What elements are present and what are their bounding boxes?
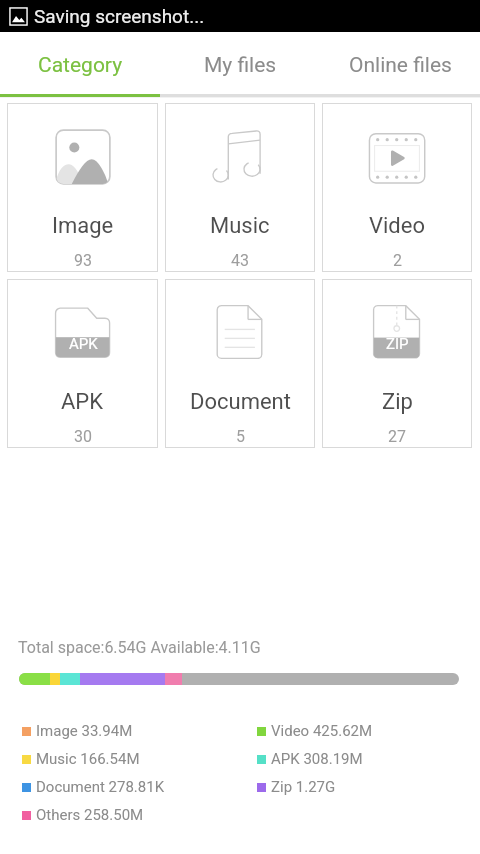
- button[interactable]: Document: [165, 279, 315, 448]
- staticText: Image: [52, 213, 114, 239]
- staticText: Image 33.94M: [36, 722, 133, 740]
- staticText: Category: [38, 53, 123, 78]
- staticText: 27: [388, 427, 406, 446]
- button[interactable]: Video: [322, 103, 472, 272]
- staticText: 43: [231, 251, 249, 270]
- button[interactable]: ZIP: [322, 279, 472, 448]
- button[interactable]: My files: [160, 32, 320, 94]
- staticText: Document: [190, 389, 291, 415]
- staticText: Zip: [382, 389, 413, 415]
- staticText: My files: [204, 53, 277, 78]
- button[interactable]: Image: [7, 103, 158, 272]
- button[interactable]: Online files: [320, 32, 480, 94]
- staticText: Document 278.81K: [36, 778, 165, 796]
- staticText: Total space:6.54G Available:4.11G: [18, 638, 261, 657]
- staticText: APK 308.19M: [271, 750, 363, 768]
- button[interactable]: Music: [165, 103, 315, 272]
- staticText: Music: [210, 213, 270, 239]
- staticText: Video: [369, 213, 425, 239]
- button[interactable]: APK: [7, 279, 158, 448]
- staticText: APK: [61, 389, 104, 415]
- staticText: ZIP: [386, 335, 409, 353]
- staticText: Zip 1.27G: [271, 778, 336, 796]
- staticText: 30: [74, 427, 92, 446]
- staticText: Others 258.50M: [36, 806, 144, 824]
- button[interactable]: Category: [0, 32, 160, 94]
- staticText: 2: [393, 251, 402, 270]
- staticText: Saving screenshot...: [34, 5, 205, 27]
- staticText: Music 166.54M: [36, 750, 140, 768]
- staticText: 5: [236, 427, 245, 446]
- staticText: Online files: [349, 53, 452, 78]
- staticText: APK: [69, 335, 98, 353]
- staticText: 93: [74, 251, 92, 270]
- other: Screenshot notification: [9, 7, 28, 26]
- staticText: Video 425.62M: [271, 722, 373, 740]
